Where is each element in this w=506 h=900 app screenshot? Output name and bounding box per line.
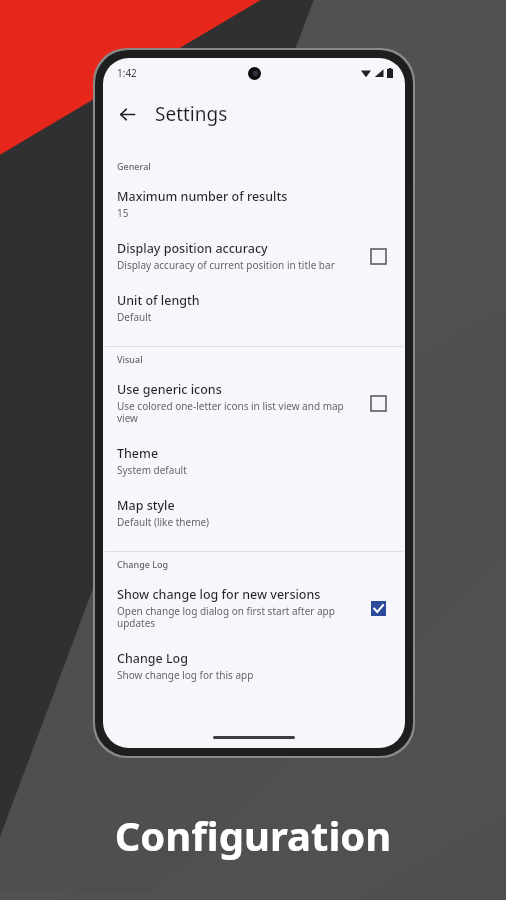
staticText: 15	[117, 206, 129, 220]
staticText: Default	[117, 310, 152, 324]
button[interactable]: Use generic icons	[103, 371, 405, 435]
staticText: Use colored one-letter icons in list vie…	[117, 399, 353, 425]
staticText: Unit of length	[117, 292, 200, 309]
button[interactable]: Display position accuracy	[103, 230, 405, 282]
button[interactable]: Maximum number of results	[103, 178, 405, 230]
staticText: Configuration	[0, 808, 506, 862]
staticText: System default	[117, 463, 187, 477]
staticText: Default (like theme)	[117, 515, 210, 529]
staticText: Display accuracy of current position in …	[117, 258, 335, 272]
staticText: Theme	[117, 445, 159, 462]
staticText: Settings	[155, 101, 228, 127]
staticText: Maximum number of results	[117, 188, 288, 205]
button[interactable]: Show change log for new versions	[103, 576, 405, 640]
button[interactable]: Unit of length	[103, 282, 405, 334]
button[interactable]: Checked	[363, 593, 393, 623]
staticText: Visual	[117, 353, 143, 365]
staticText: 1:42	[117, 66, 137, 80]
staticText: Change Log	[117, 558, 169, 570]
staticText: Open change log dialog on first start af…	[117, 604, 353, 630]
staticText: General	[117, 160, 151, 172]
button[interactable]: Change Log	[103, 640, 405, 692]
staticText: Display position accuracy	[117, 240, 268, 257]
staticText: Show change log for new versions	[117, 586, 321, 603]
button[interactable]: Unchecked	[363, 241, 393, 271]
staticText: Use generic icons	[117, 381, 222, 398]
button[interactable]: Unchecked	[363, 388, 393, 418]
button[interactable]: Map style	[103, 487, 405, 539]
staticText: Change Log	[117, 650, 189, 667]
staticText: Show change log for this app	[117, 668, 254, 682]
button[interactable]: Theme	[103, 435, 405, 487]
button[interactable]: Back	[107, 94, 147, 134]
staticText: Map style	[117, 497, 175, 514]
